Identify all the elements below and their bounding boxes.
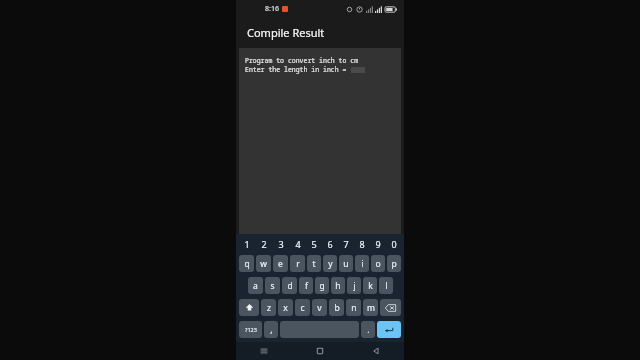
staticText: e	[278, 258, 283, 270]
button[interactable]: f	[299, 277, 313, 294]
button[interactable]: 9	[370, 237, 386, 251]
staticText: q	[244, 258, 250, 270]
button[interactable]: Home	[292, 342, 348, 360]
staticText: t	[312, 258, 316, 270]
staticText: y	[328, 258, 333, 270]
staticText: 0	[391, 238, 397, 250]
staticText: s	[270, 280, 275, 292]
button[interactable]: Backspace	[380, 299, 401, 316]
button[interactable]: 7	[338, 237, 354, 251]
staticText: f	[305, 280, 308, 292]
staticText: 3	[278, 238, 284, 250]
button[interactable]: g	[315, 277, 329, 294]
button[interactable]: c	[295, 299, 310, 316]
button[interactable]: 2	[255, 237, 272, 251]
staticText: i	[361, 258, 364, 270]
staticText: z	[267, 302, 271, 314]
button[interactable]: Enter	[377, 321, 401, 338]
staticText: Compile Result	[247, 25, 325, 40]
button[interactable]: r	[290, 255, 305, 272]
button[interactable]: .	[361, 321, 375, 338]
staticText: c	[300, 302, 305, 314]
button[interactable]: k	[363, 277, 377, 294]
button[interactable]: i	[355, 255, 369, 272]
button[interactable]: 6	[322, 237, 338, 251]
staticText: v	[317, 302, 322, 314]
staticText: u	[343, 258, 349, 270]
button[interactable]: q	[239, 255, 254, 272]
button[interactable]: 8	[354, 237, 370, 251]
button[interactable]: a	[248, 277, 263, 294]
button[interactable]: j	[347, 277, 361, 294]
staticText: x	[283, 302, 288, 314]
staticText: r	[296, 258, 300, 270]
button[interactable]: y	[323, 255, 337, 272]
button[interactable]: b	[329, 299, 344, 316]
staticText: m	[367, 302, 375, 314]
staticText: 4	[295, 238, 301, 250]
button[interactable]: Back	[348, 342, 404, 360]
button[interactable]: 5	[306, 237, 322, 251]
staticText: ?123	[245, 326, 257, 333]
button[interactable]: ,	[264, 321, 278, 338]
button[interactable]: s	[265, 277, 280, 294]
staticText: n	[351, 302, 357, 314]
button[interactable]: u	[339, 255, 353, 272]
button[interactable]: l	[379, 277, 393, 294]
staticText: b	[334, 302, 340, 314]
button[interactable]: e	[273, 255, 288, 272]
staticText: 8	[359, 238, 365, 250]
staticText: Program to convert inch to cm	[245, 56, 359, 65]
button[interactable]: Shift	[239, 299, 259, 316]
button[interactable]: 1	[238, 237, 255, 251]
staticText: 5	[311, 238, 317, 250]
staticText: a	[253, 280, 258, 292]
staticText: 2	[261, 238, 267, 250]
staticText: d	[287, 280, 293, 292]
staticText: 7	[343, 238, 349, 250]
staticText: o	[375, 258, 381, 270]
button[interactable]: ?123	[239, 321, 262, 338]
button[interactable]: m	[363, 299, 378, 316]
button[interactable]: h	[331, 277, 345, 294]
button[interactable]: t	[307, 255, 321, 272]
staticText: Enter the length in inch =	[245, 65, 351, 74]
button[interactable]: 0	[386, 237, 402, 251]
button[interactable]: o	[371, 255, 385, 272]
staticText: 1	[244, 238, 250, 250]
button[interactable]: w	[256, 255, 271, 272]
button[interactable]: Recents	[236, 342, 292, 360]
staticText: 8:16	[265, 4, 279, 14]
staticText: h	[335, 280, 341, 292]
staticText: 6	[327, 238, 333, 250]
button[interactable]: d	[282, 277, 297, 294]
staticText: 9	[375, 238, 381, 250]
staticText: l	[385, 280, 388, 292]
staticText: j	[353, 280, 356, 292]
button[interactable]: 4	[289, 237, 306, 251]
button[interactable]: 3	[272, 237, 289, 251]
staticText: ,	[270, 324, 273, 336]
staticText: p	[391, 258, 397, 270]
staticText: w	[260, 258, 267, 270]
staticText: .	[367, 324, 370, 336]
staticText: g	[319, 280, 325, 292]
button[interactable]: z	[261, 299, 276, 316]
button[interactable]: n	[346, 299, 361, 316]
staticText: k	[368, 280, 373, 292]
button[interactable]: v	[312, 299, 327, 316]
button[interactable]: p	[387, 255, 401, 272]
button[interactable]: x	[278, 299, 293, 316]
